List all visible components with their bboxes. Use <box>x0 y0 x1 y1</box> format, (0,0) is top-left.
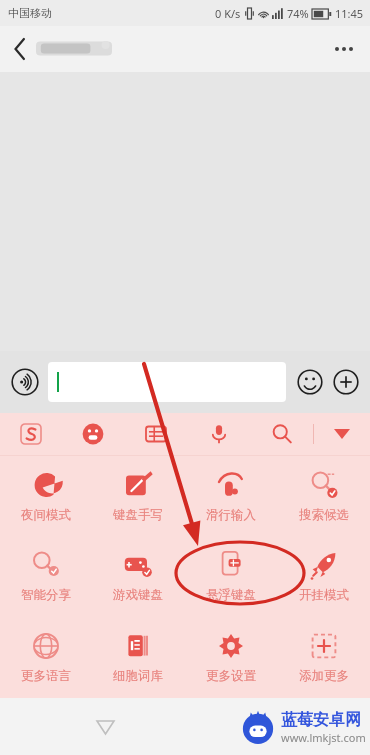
staticText: 细胞词库 <box>113 668 163 684</box>
staticText: 智能分享 <box>21 587 71 603</box>
button[interactable]: Add attachment <box>330 366 362 398</box>
button[interactable]: 滑行输入 <box>184 456 277 536</box>
button[interactable]: Collapse panel <box>314 413 370 455</box>
button[interactable]: Sogou logo <box>0 413 62 455</box>
staticText: 0 K/s <box>215 6 241 21</box>
staticText: 74% <box>287 6 309 21</box>
staticText: 11:45 <box>335 6 364 21</box>
button[interactable]: Emoji <box>62 413 124 455</box>
button[interactable]: 添加更多 <box>277 617 370 698</box>
button[interactable]: Keyboard layout <box>124 413 187 455</box>
staticText: 更多设置 <box>206 668 256 684</box>
staticText: 键盘手写 <box>113 507 163 523</box>
staticText: 开挂模式 <box>299 587 349 603</box>
staticText: 滑行输入 <box>206 507 256 523</box>
button[interactable]: Voice input <box>187 413 250 455</box>
staticText: 更多语言 <box>21 668 71 684</box>
staticText: 悬浮键盘 <box>206 587 256 603</box>
button[interactable]: Emoji <box>294 366 326 398</box>
button[interactable]: Back <box>85 707 125 747</box>
button[interactable]: More options <box>324 29 364 69</box>
button[interactable] <box>48 362 286 402</box>
button[interactable]: 细胞词库 <box>92 617 184 698</box>
button[interactable]: 更多设置 <box>184 617 277 698</box>
button[interactable]: 智能分享 <box>0 536 92 617</box>
button[interactable]: Voice message <box>8 365 42 399</box>
button[interactable]: 游戏键盘 <box>92 536 184 617</box>
button[interactable]: 搜索候选 <box>277 456 370 536</box>
staticText: 游戏键盘 <box>113 587 163 603</box>
button[interactable]: 更多语言 <box>0 617 92 698</box>
button[interactable]: 悬浮键盘 <box>184 536 277 617</box>
staticText: 蓝莓安卓网 <box>281 710 361 730</box>
staticText: www.lmkjst.com <box>281 730 366 745</box>
button[interactable]: 键盘手写 <box>92 456 184 536</box>
staticText: 中国移动 <box>8 6 52 20</box>
staticText: 添加更多 <box>299 668 349 684</box>
button[interactable]: Back <box>0 29 40 69</box>
button[interactable]: 夜间模式 <box>0 456 92 536</box>
staticText: 夜间模式 <box>21 507 71 523</box>
staticText: 搜索候选 <box>299 507 349 523</box>
button[interactable]: Search <box>250 413 313 455</box>
button[interactable]: 开挂模式 <box>277 536 370 617</box>
